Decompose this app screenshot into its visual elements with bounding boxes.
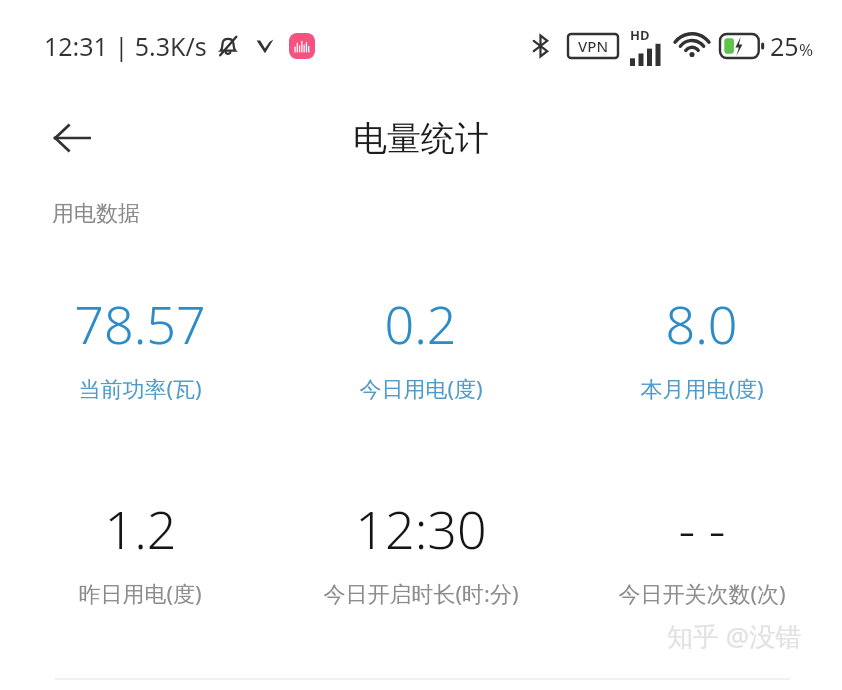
staticText: 本月用电(度)	[640, 373, 764, 403]
staticText: 用电数据	[52, 200, 140, 228]
staticText: %	[799, 38, 814, 61]
staticText: 知乎 @没错	[667, 618, 802, 654]
staticText: 25	[770, 29, 799, 63]
button[interactable]: 1.2	[0, 493, 280, 608]
staticText: 12:30	[355, 493, 487, 564]
button[interactable]: 78.57	[0, 288, 280, 403]
staticText: 1.2	[104, 493, 177, 564]
staticText: VPN	[578, 36, 609, 56]
button[interactable]: 0.2	[280, 288, 561, 403]
button[interactable]: 12:30	[280, 493, 561, 608]
staticText: 昨日用电(度)	[78, 578, 202, 608]
staticText: - -	[678, 493, 726, 564]
staticText: HD	[630, 26, 650, 44]
staticText: 78.57	[74, 288, 206, 359]
staticText: 今日用电(度)	[359, 373, 483, 403]
button[interactable]: 8.0	[561, 288, 842, 403]
staticText: 今日开关次数(次)	[618, 578, 786, 608]
button[interactable]: - -	[561, 493, 842, 608]
button[interactable]: Back	[40, 106, 104, 170]
staticText: 当前功率(瓦)	[78, 373, 202, 403]
staticText: 0.2	[384, 288, 457, 359]
staticText: 今日开启时长(时:分)	[323, 578, 519, 608]
staticText: 12:31 | 5.3K/s	[44, 29, 207, 63]
staticText: 电量统计	[353, 117, 489, 160]
staticText: 8.0	[665, 288, 738, 359]
